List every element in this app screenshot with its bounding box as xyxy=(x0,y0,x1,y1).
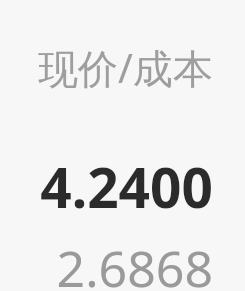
staticText: 现价/成本 xyxy=(16,40,213,95)
staticText: 2.6868 xyxy=(16,234,213,291)
button[interactable]: 现价/成本 xyxy=(0,0,245,291)
staticText: 4.2400 xyxy=(16,149,213,224)
